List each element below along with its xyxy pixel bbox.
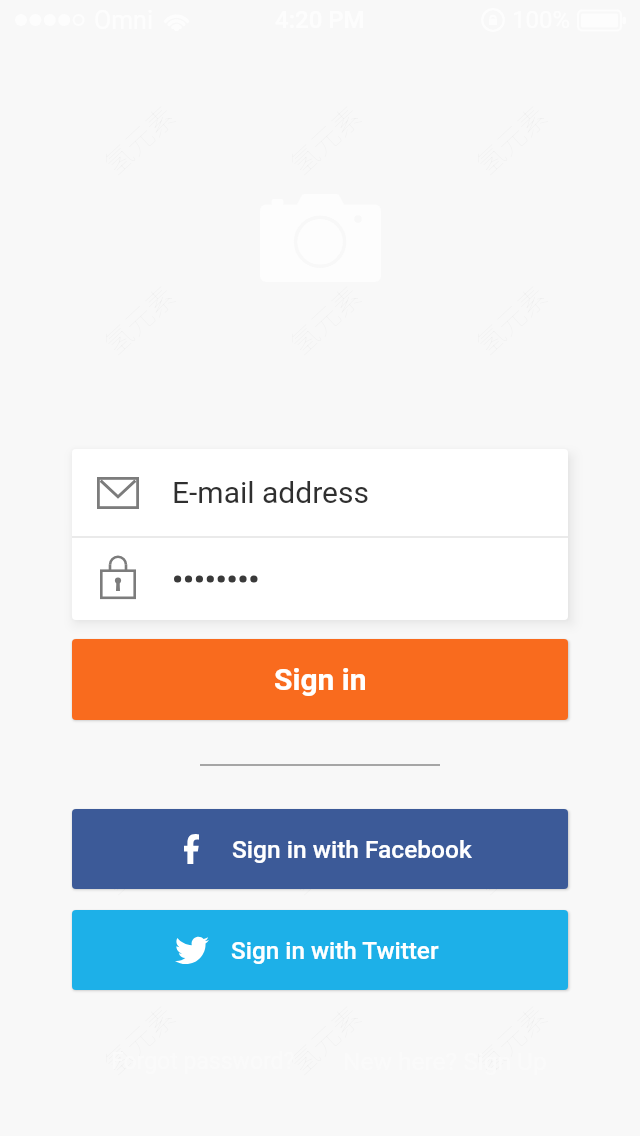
button[interactable]: Password [72,538,568,620]
button[interactable]: Sign in [72,639,568,720]
other: Password [100,556,136,599]
button[interactable]: Sign in with Facebook [72,809,568,889]
staticText: Sign in with Facebook [232,835,472,864]
button[interactable]: E-mail [72,449,568,536]
staticText: Sign in with Twitter [231,936,439,964]
staticText: E-mail address [172,475,369,510]
button[interactable]: Sign in with Twitter [72,910,568,990]
other: E-mail [97,477,139,509]
staticText: Sign in [274,662,367,697]
